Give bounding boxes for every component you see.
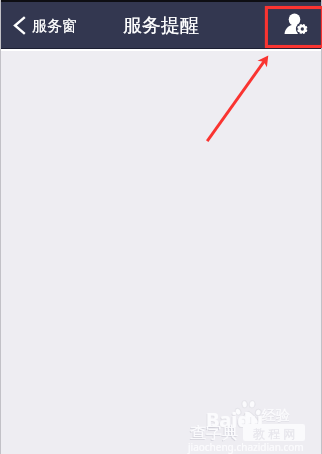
- staticText: 服务提醒: [123, 14, 199, 38]
- staticText: 查字典: [189, 424, 237, 444]
- staticText: 教 程 网: [253, 425, 296, 441]
- staticText: 经验: [262, 408, 290, 426]
- button[interactable]: Manage service accounts: [280, 12, 310, 40]
- button[interactable]: 服务窗: [13, 17, 77, 36]
- staticText: 查字典: [190, 423, 238, 443]
- staticText: 服务窗: [32, 17, 77, 36]
- staticText: 经验: [262, 407, 290, 425]
- staticText: Baidu: [205, 407, 262, 434]
- staticText: jiaocheng.chazidian.com: [188, 440, 304, 454]
- staticText: Baidu: [206, 406, 263, 433]
